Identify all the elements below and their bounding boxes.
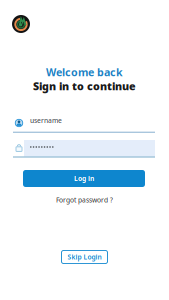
button[interactable]: Log in: [23, 170, 145, 187]
staticText: Log in: [74, 174, 94, 183]
button[interactable]: Forgot password ?: [0, 195, 169, 205]
staticText: Skip Login: [67, 253, 101, 261]
button[interactable]: Skip Login: [61, 250, 107, 263]
staticText: Forgot password ?: [56, 196, 113, 204]
staticText: username: [30, 116, 62, 125]
staticText: Sign in to continue: [33, 79, 136, 93]
staticText: Welcome back: [46, 65, 123, 79]
